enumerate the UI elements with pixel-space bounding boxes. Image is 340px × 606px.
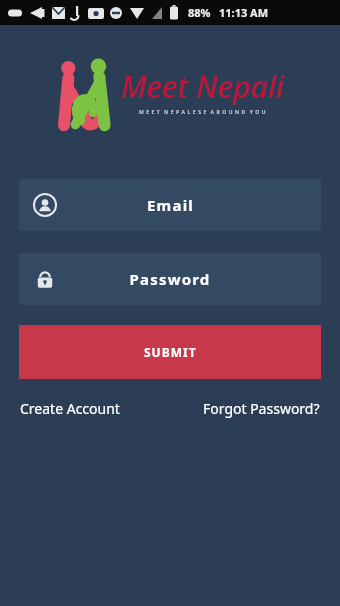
staticText: Forgot Password? bbox=[203, 399, 320, 418]
staticText: Email bbox=[147, 195, 194, 215]
staticText: Create Account bbox=[20, 399, 120, 418]
button[interactable]: Forgot Password? bbox=[203, 399, 320, 418]
button[interactable]: SUBMIT bbox=[19, 325, 321, 379]
staticText: 88% bbox=[188, 5, 211, 20]
staticText: 11:13 AM bbox=[219, 5, 269, 20]
button[interactable]: Email bbox=[19, 179, 321, 231]
button[interactable]: Password bbox=[19, 253, 321, 305]
staticText: SUBMIT bbox=[144, 344, 197, 360]
staticText: Password bbox=[129, 269, 211, 289]
button[interactable]: Create Account bbox=[20, 399, 120, 418]
staticText: M E E T N E P A L E S E A R O U N D Y O … bbox=[139, 109, 267, 116]
staticText: Meet Nepali bbox=[121, 66, 285, 107]
